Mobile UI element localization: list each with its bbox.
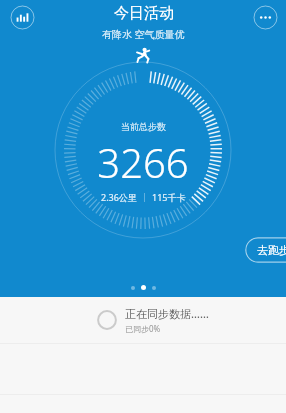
staticText: 115千卡 bbox=[152, 191, 186, 203]
staticText: 已同步0% bbox=[125, 323, 161, 334]
staticText: 去跑步 bbox=[257, 243, 286, 257]
staticText: 有降水 空气质量优 bbox=[102, 27, 185, 41]
staticText: 当前总步数 bbox=[121, 121, 166, 132]
button[interactable]: Statistics bbox=[10, 5, 35, 30]
staticText: 正在同步数据…… bbox=[125, 306, 209, 321]
button[interactable]: Syncing bbox=[0, 297, 286, 343]
other: Syncing bbox=[97, 310, 117, 330]
button[interactable]: 去跑步 bbox=[245, 237, 286, 263]
staticText: 3266 bbox=[97, 135, 189, 189]
staticText: 2.36公里 bbox=[101, 191, 137, 203]
button[interactable]: More options bbox=[253, 5, 278, 30]
staticText: 今日活动 bbox=[114, 4, 174, 23]
